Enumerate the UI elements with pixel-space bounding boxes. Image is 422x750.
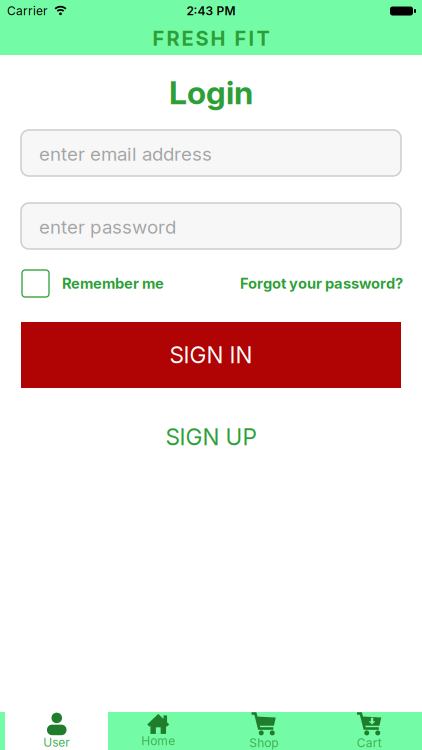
staticText: Home: [141, 734, 175, 748]
button[interactable]: User: [0, 712, 105, 750]
staticText: SIGN UP: [165, 424, 256, 450]
staticText: Forgot your password?: [240, 275, 403, 292]
staticText: enter email address: [39, 143, 212, 165]
staticText: enter password: [39, 216, 176, 238]
button[interactable]: enter password: [21, 203, 401, 249]
staticText: 2:43 PM: [186, 4, 235, 18]
button[interactable]: Cart: [316, 712, 422, 750]
button[interactable]: Shop: [211, 712, 316, 750]
button[interactable]: SIGN UP: [165, 424, 256, 450]
staticText: Cart: [357, 736, 382, 750]
staticText: Login: [169, 74, 253, 111]
button[interactable]: SIGN IN: [21, 322, 401, 388]
staticText: User: [43, 735, 70, 750]
button[interactable]: enter email address: [21, 130, 401, 176]
staticText: F R E S H F I T: [152, 27, 269, 50]
staticText: Shop: [249, 736, 278, 750]
button[interactable]: Forgot your password?: [240, 275, 403, 292]
staticText: Carrier: [7, 4, 48, 18]
button[interactable]: Remember me: [22, 270, 164, 297]
button[interactable]: Home: [105, 712, 211, 750]
staticText: SIGN IN: [169, 342, 252, 368]
staticText: Remember me: [62, 275, 164, 292]
